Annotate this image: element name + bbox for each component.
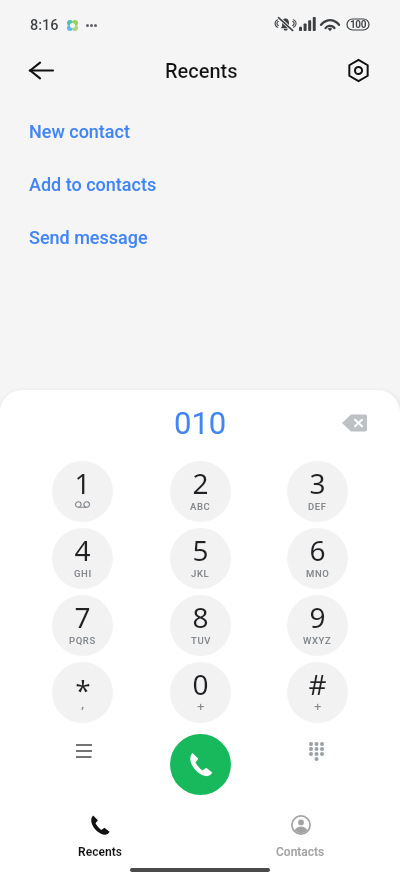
button[interactable]: Back xyxy=(19,48,63,92)
button[interactable]: 6 xyxy=(287,528,348,589)
staticText: 010 xyxy=(174,405,227,441)
button[interactable]: 1 xyxy=(52,461,113,522)
staticText: Send message xyxy=(29,227,148,248)
button[interactable]: Backspace xyxy=(334,403,374,443)
button[interactable]: 4 xyxy=(52,528,113,589)
staticText: + xyxy=(197,697,205,715)
button[interactable]: 0 xyxy=(170,662,231,723)
button[interactable]: # xyxy=(287,662,348,723)
button[interactable]: Settings xyxy=(336,48,380,92)
button[interactable]: Recents xyxy=(0,810,200,858)
staticText: * xyxy=(75,671,91,709)
button[interactable]: 9 xyxy=(287,595,348,656)
staticText: 9 xyxy=(309,598,326,636)
staticText: New contact xyxy=(29,121,130,142)
button[interactable]: 2 xyxy=(170,461,231,522)
button[interactable]: New contact xyxy=(0,105,400,158)
staticText: 7 xyxy=(74,598,91,636)
staticText: 4 xyxy=(74,531,91,569)
staticText: Recents xyxy=(165,59,238,82)
staticText: ABC xyxy=(190,501,211,512)
staticText: 0 xyxy=(192,665,209,703)
staticText: 8:16 xyxy=(30,17,59,34)
button[interactable]: Dialpad xyxy=(295,730,337,772)
button[interactable]: 3 xyxy=(287,461,348,522)
staticText: , xyxy=(81,694,85,712)
staticText: 2 xyxy=(192,464,209,502)
staticText: 6 xyxy=(309,531,326,569)
staticText: PQRS xyxy=(69,635,96,646)
staticText: 3 xyxy=(309,464,326,502)
staticText: DEF xyxy=(308,501,327,512)
button[interactable]: Add to contacts xyxy=(0,158,400,211)
staticText: 5 xyxy=(192,531,209,569)
staticText: MNO xyxy=(306,568,330,579)
staticText: 8 xyxy=(192,598,209,636)
button[interactable]: 7 xyxy=(52,595,113,656)
staticText: Recents xyxy=(78,845,122,859)
button[interactable]: Send message xyxy=(0,211,400,264)
staticText: 1 xyxy=(74,464,91,502)
button[interactable]: Call xyxy=(170,734,231,795)
staticText: WXYZ xyxy=(303,635,332,646)
button[interactable]: * xyxy=(52,662,113,723)
staticText: Contacts xyxy=(276,845,325,859)
staticText: Add to contacts xyxy=(29,174,157,195)
staticText: # xyxy=(308,665,327,703)
button[interactable]: More options xyxy=(63,730,105,772)
button[interactable]: Contacts xyxy=(200,810,400,858)
staticText: GHI xyxy=(74,568,92,579)
staticText: 100 xyxy=(350,19,367,30)
staticText: TUV xyxy=(191,635,211,646)
staticText: JKL xyxy=(191,568,210,579)
staticText: + xyxy=(314,697,322,715)
button[interactable]: 8 xyxy=(170,595,231,656)
button[interactable]: 5 xyxy=(170,528,231,589)
